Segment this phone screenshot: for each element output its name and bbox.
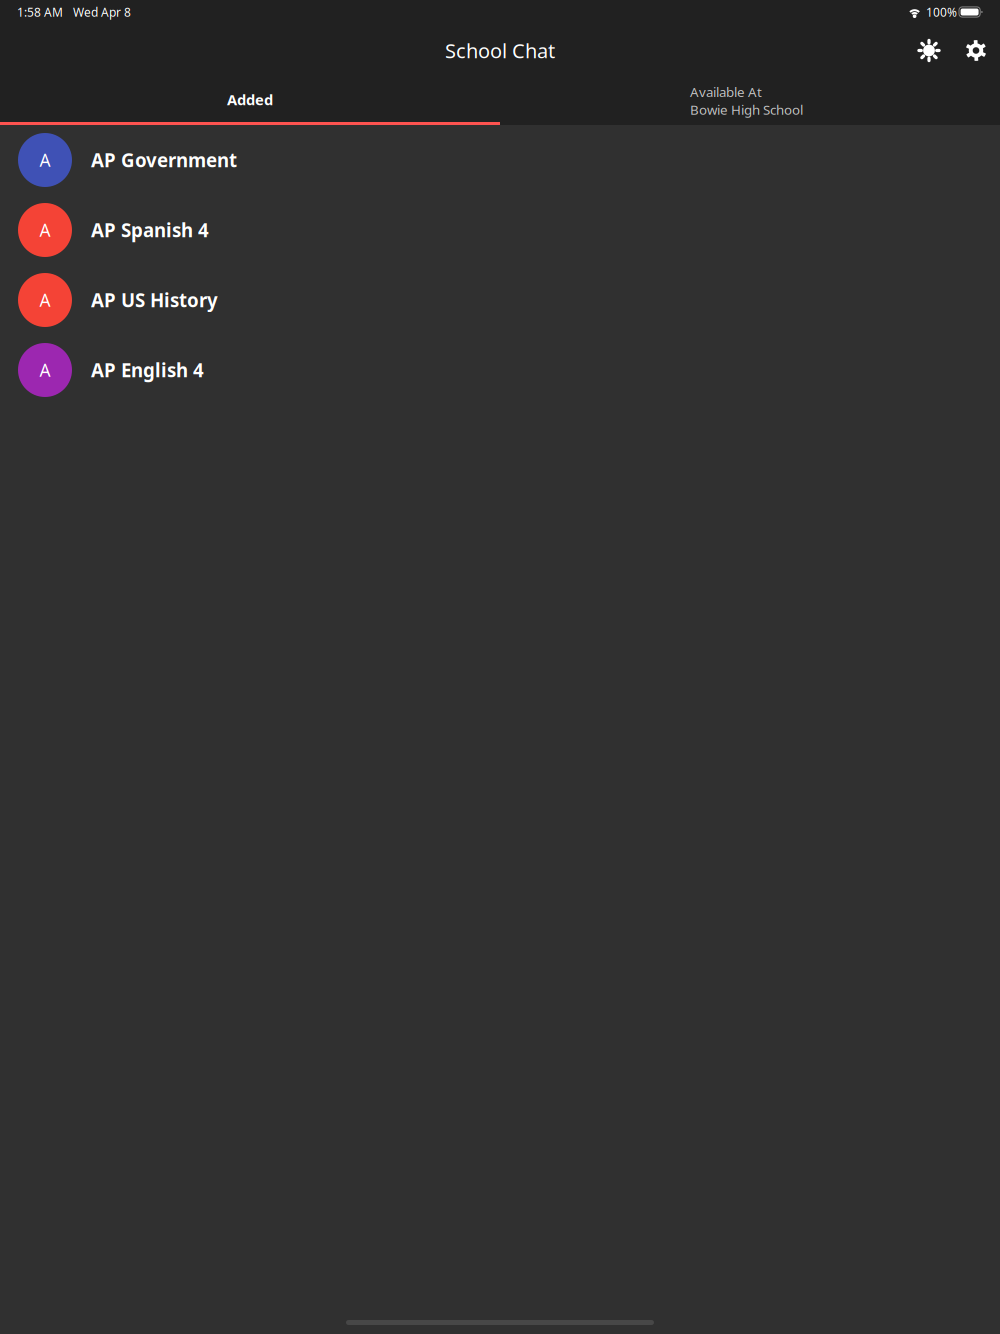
button[interactable]: A: [0, 195, 1000, 265]
button[interactable]: Settings: [954, 28, 998, 72]
staticText: Bowie High School: [690, 101, 803, 118]
button[interactable]: Added: [0, 77, 500, 125]
staticText: AP Spanish 4: [91, 218, 209, 242]
staticText: A: [39, 218, 50, 241]
staticText: Added: [227, 90, 273, 109]
staticText: A: [39, 358, 50, 381]
button[interactable]: Available At: [500, 77, 1000, 125]
button[interactable]: A: [0, 125, 1000, 195]
staticText: AP US History: [91, 288, 218, 312]
staticText: Wed Apr 8: [73, 4, 131, 20]
staticText: A: [39, 148, 50, 171]
staticText: AP English 4: [91, 358, 204, 382]
staticText: Available At: [690, 83, 762, 101]
button[interactable]: Appearance: [907, 28, 951, 72]
staticText: AP Government: [91, 148, 237, 172]
staticText: A: [39, 288, 50, 311]
staticText: 100%: [926, 4, 957, 20]
button[interactable]: A: [0, 265, 1000, 335]
staticText: 1:58 AM: [17, 4, 63, 20]
button[interactable]: A: [0, 335, 1000, 405]
staticText: School Chat: [445, 37, 555, 64]
